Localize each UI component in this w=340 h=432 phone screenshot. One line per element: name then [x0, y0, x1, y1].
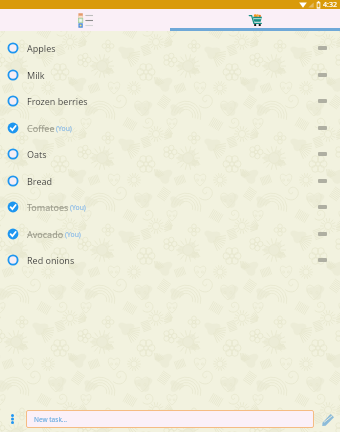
button[interactable]: New task... [26, 410, 314, 428]
button[interactable]: Milk [0, 61, 340, 88]
staticText: Coffee [27, 122, 55, 134]
button[interactable]: Shopping cart [170, 9, 340, 31]
staticText: Frozen berries [27, 95, 88, 107]
staticText: Apples [27, 42, 56, 54]
staticText: (You) [56, 124, 72, 133]
button[interactable]: More options [0, 407, 25, 431]
button[interactable]: Bread [0, 167, 340, 194]
staticText: Milk [27, 69, 45, 81]
staticText: (You) [70, 203, 86, 212]
button[interactable]: Coffee [0, 114, 340, 141]
button[interactable]: Lists [0, 9, 170, 31]
staticText: (You) [65, 230, 81, 239]
button[interactable]: Red onions [0, 246, 340, 273]
button[interactable]: Tomatoes [0, 193, 340, 220]
staticText: New task... [34, 415, 68, 424]
staticText: Tomatoes [27, 201, 69, 213]
button[interactable]: Apples [0, 34, 340, 61]
button[interactable]: Edit [315, 408, 340, 432]
staticText: 4:32 [323, 0, 337, 9]
staticText: Bread [27, 175, 53, 187]
staticText: Red onions [27, 254, 75, 266]
button[interactable]: Avocado [0, 220, 340, 247]
staticText: Oats [27, 148, 47, 160]
button[interactable]: Oats [0, 140, 340, 167]
staticText: Avocado [27, 228, 64, 240]
button[interactable]: Frozen berries [0, 87, 340, 114]
